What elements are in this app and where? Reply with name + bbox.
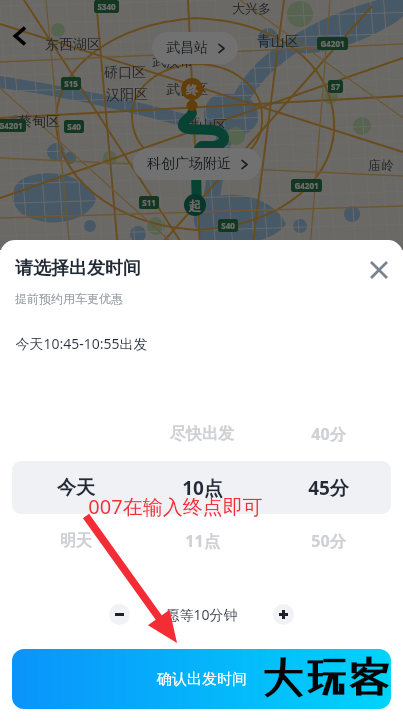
staticText: 今天 [57,476,95,500]
button[interactable]: Decrease wait time [109,604,130,625]
button[interactable]: 今天 [12,461,139,514]
staticText: S340 [97,1,116,12]
staticText: 50分 [311,530,346,552]
button[interactable]: 武昌站 [152,32,238,64]
staticText: 庙岭 [368,157,394,173]
staticText: 武汉市 [152,53,194,71]
button[interactable]: 50分 [265,514,391,568]
staticText: 科创广场附近 [147,155,231,173]
button[interactable]: 明天 [12,514,139,568]
staticText: 汉阳区 [106,86,148,104]
staticText: G4201 [0,120,23,131]
staticText: 武昌区 [166,81,208,99]
staticText: S7 [331,81,340,92]
staticText: S15 [64,78,78,89]
button[interactable]: Back [3,19,37,53]
button[interactable]: 10点 [139,461,265,514]
staticText: 终 [186,82,198,97]
staticText: 10点 [182,475,223,501]
staticText: 007在输入终点即可 [88,493,263,520]
button[interactable]: 确认出发时间 [12,649,391,709]
staticText: 提前预约用车更优惠 [15,291,123,306]
staticText: 11点 [185,530,220,552]
button[interactable]: 尽快出发 [139,407,265,461]
staticText: 愿等10分钟 [165,605,238,624]
staticText: 大玩客 [262,651,391,702]
button[interactable]: 40分 [265,407,391,461]
staticText: 大兴多 [232,0,271,16]
staticText: 蔡甸区 [18,113,60,131]
staticText: 确认出发时间 [157,670,247,689]
staticText: S40 [221,220,235,231]
button[interactable]: 科创广场附近 [133,148,261,180]
button[interactable]: Increase wait time [273,604,294,625]
staticText: S11 [142,197,156,208]
button[interactable]: 45分 [265,461,391,514]
staticText: 尽快出发 [170,424,234,444]
staticText: 明天 [60,531,92,551]
staticText: 青山区 [257,33,299,51]
button[interactable]: 11点 [139,514,265,568]
button[interactable]: Close [363,254,395,286]
staticText: 40分 [311,423,346,445]
staticText: 起 [189,198,201,213]
staticText: 硚口区 [104,64,146,82]
staticText: 请选择出发时间 [15,257,141,280]
staticText: 东西湖区 [45,36,101,54]
staticText: 武昌站 [166,39,208,57]
staticText: G4201 [294,180,319,191]
staticText: 洪山区 [185,117,227,135]
staticText: G4201 [320,38,345,49]
staticText: 45分 [308,475,349,501]
staticText: 今天10:45-10:55出发 [15,334,148,353]
staticText: S40 [67,121,81,132]
